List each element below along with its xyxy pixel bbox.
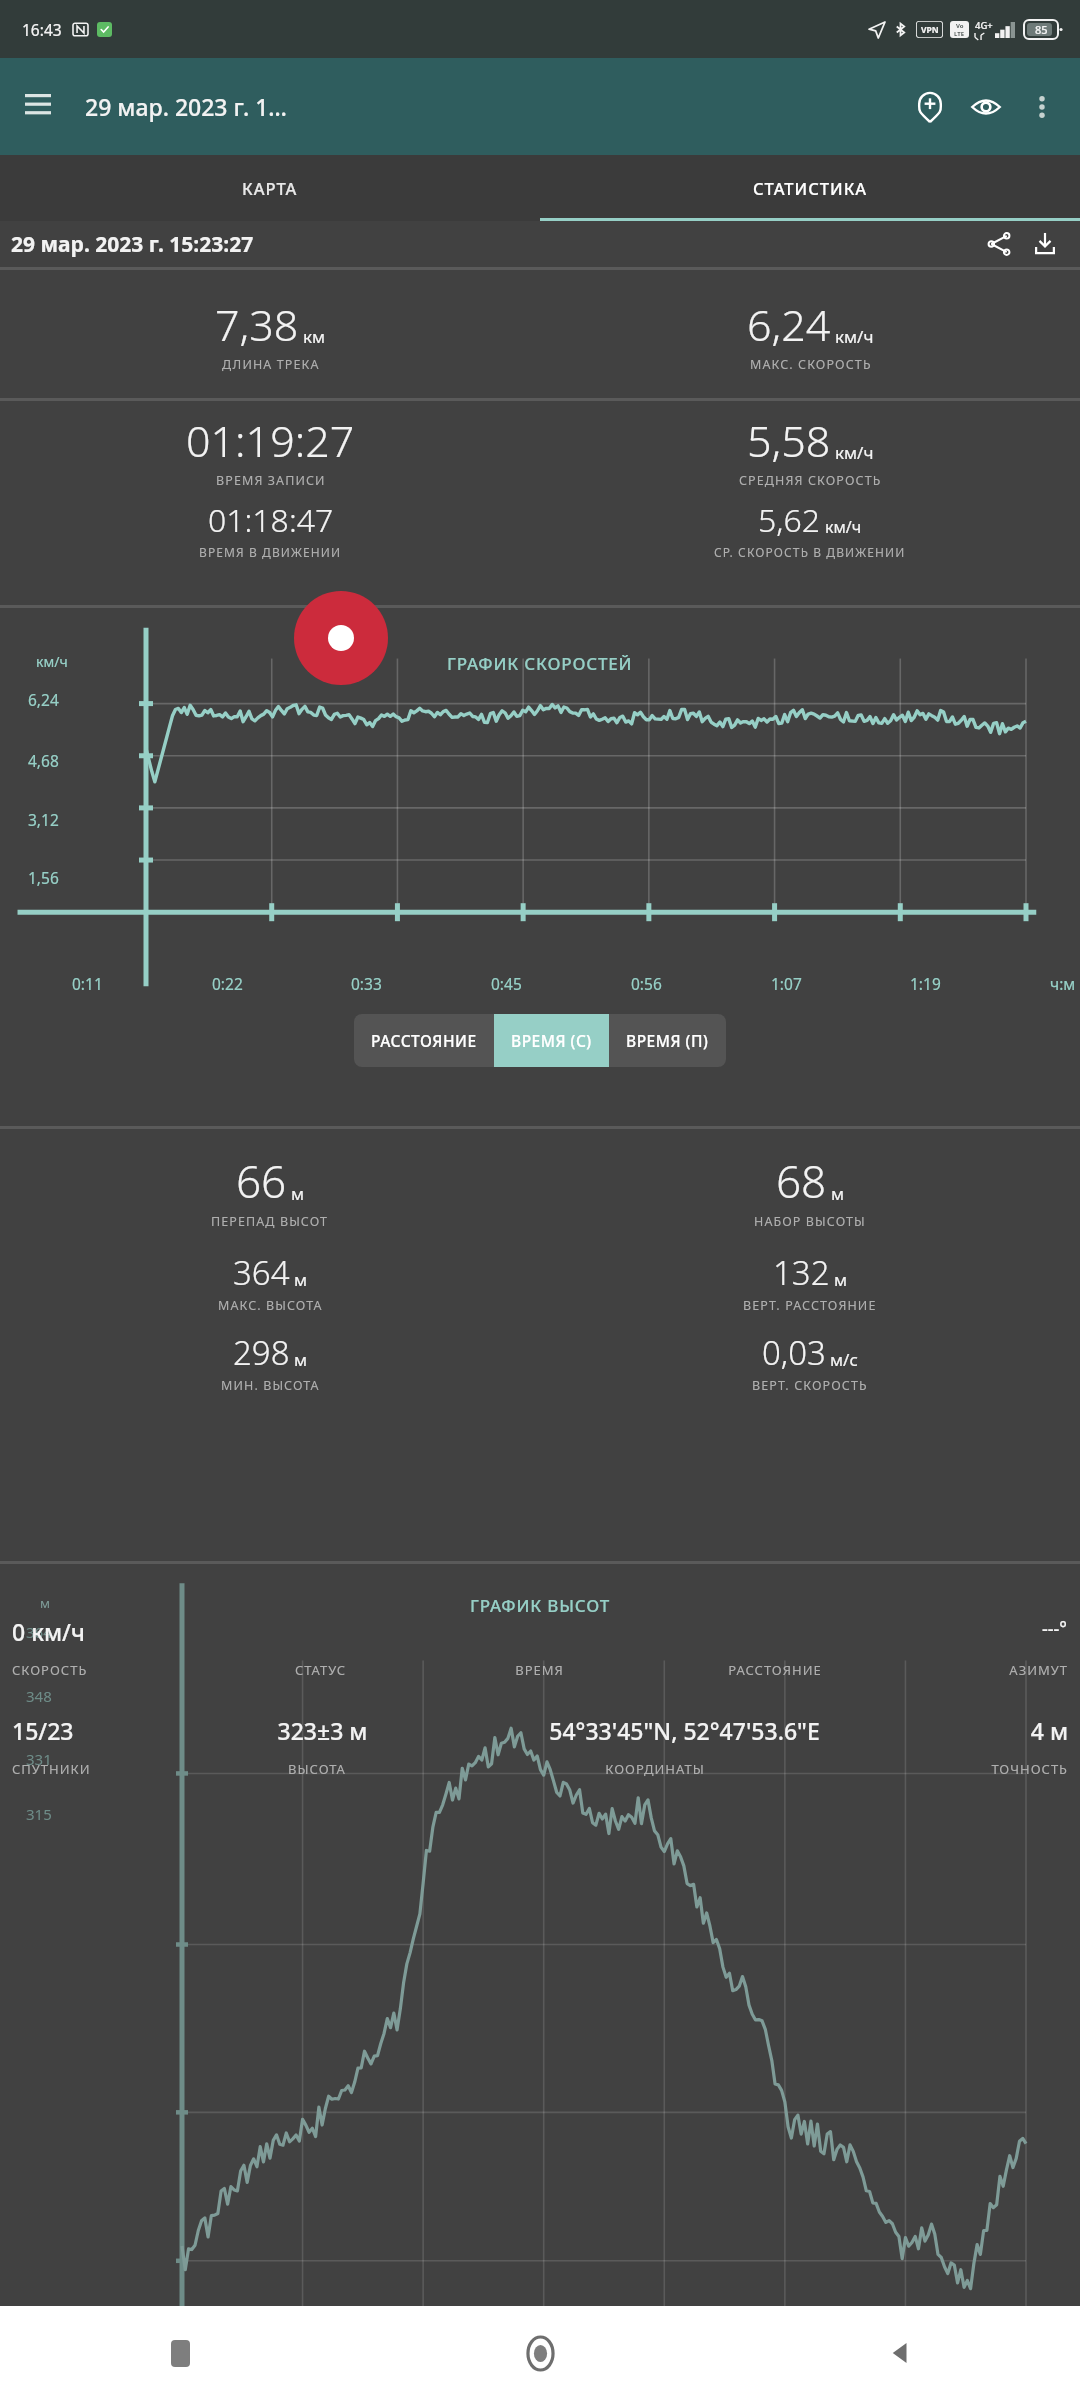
staticText: ВРЕМЯ В ДВИЖЕНИИ	[199, 544, 342, 560]
button[interactable]: Record	[294, 591, 388, 685]
staticText: м	[834, 1268, 848, 1291]
staticText: 298	[233, 1330, 290, 1375]
staticText: км/ч	[36, 652, 68, 671]
staticText: ВРЕМЯ ЗАПИСИ	[216, 472, 326, 489]
staticText: НАБОР ВЫСОТЫ	[754, 1213, 866, 1230]
staticText: м	[831, 1182, 845, 1205]
staticText: 1:07	[771, 973, 802, 994]
staticText: СТАТУС	[215, 1661, 426, 1679]
staticText: ГРАФИК СКОРОСТЕЙ	[447, 652, 633, 675]
button[interactable]: ВРЕМЯ (П)	[609, 1014, 726, 1067]
button[interactable]: Back	[881, 2334, 919, 2372]
staticText: 315	[26, 1804, 52, 1824]
button[interactable]: Menu	[14, 83, 62, 131]
button[interactable]: Home	[521, 2334, 559, 2372]
staticText: 0:56	[631, 973, 662, 994]
staticText: м	[294, 1268, 308, 1291]
staticText: км/ч	[825, 516, 862, 538]
staticText: 0,03	[762, 1330, 826, 1375]
staticText: МАКС. СКОРОСТЬ	[750, 356, 872, 373]
staticText: ДЛИНА ТРЕКА	[222, 356, 320, 373]
staticText: 29 мар. 2023 г. 1…	[85, 91, 287, 122]
staticText: 4G+	[975, 19, 993, 32]
staticText: м	[40, 1594, 50, 1612]
button[interactable]: Recent apps	[171, 2340, 190, 2367]
staticText: 364	[26, 1622, 52, 1642]
staticText: 1:19	[910, 973, 941, 994]
staticText: 7,38	[215, 295, 299, 354]
button[interactable]: Visibility	[958, 79, 1014, 135]
staticText: ГРАФИК ВЫСОТ	[470, 1594, 610, 1617]
staticText: ТОЧНОСТЬ	[886, 1760, 1068, 1778]
staticText: МИН. ВЫСОТА	[221, 1377, 320, 1394]
staticText: 66	[236, 1151, 287, 1211]
staticText: СР. СКОРОСТЬ В ДВИЖЕНИИ	[714, 544, 906, 560]
staticText: км/ч	[835, 325, 874, 348]
staticText: 5,62	[758, 498, 821, 542]
staticText: 16:43	[22, 19, 62, 40]
staticText: КАРТА	[242, 177, 298, 199]
staticText: ПЕРЕПАД ВЫСОТ	[211, 1213, 329, 1230]
staticText: КООРДИНАТЫ	[424, 1760, 886, 1778]
staticText: ВЕРТ. РАССТОЯНИЕ	[743, 1297, 877, 1314]
staticText: 0 км/ч	[12, 1616, 85, 1647]
staticText: 01:19:27	[186, 411, 355, 470]
staticText: 0:22	[212, 973, 243, 994]
button[interactable]: Share	[976, 221, 1022, 267]
staticText: 3,12	[28, 809, 59, 830]
staticText: 132	[773, 1250, 830, 1295]
staticText: 85	[1035, 22, 1048, 37]
staticText: Vo	[956, 22, 964, 30]
staticText: ВРЕМЯ (С)	[511, 1030, 592, 1051]
staticText: 4 м	[920, 1715, 1068, 1746]
staticText: ВЕРТ. СКОРОСТЬ	[752, 1377, 868, 1394]
staticText: 364	[233, 1250, 290, 1295]
staticText: 348	[26, 1686, 52, 1706]
staticText: ч:м	[1050, 973, 1076, 994]
staticText: LTE	[954, 30, 965, 38]
staticText: 4,68	[28, 750, 59, 771]
staticText: ВРЕМЯ (П)	[626, 1030, 709, 1051]
button[interactable]: РАССТОЯНИЕ	[354, 1014, 494, 1067]
staticText: СПУТНИКИ	[12, 1760, 210, 1778]
staticText: км	[303, 325, 326, 348]
staticText: 54°33'45"N, 52°47'53.6"E	[449, 1715, 920, 1746]
staticText: 1,56	[28, 867, 59, 888]
staticText: 29 мар. 2023 г. 15:23:27	[11, 230, 254, 259]
staticText: м	[291, 1182, 305, 1205]
staticText: 68	[776, 1151, 827, 1211]
staticText: РАССТОЯНИЕ	[653, 1661, 897, 1679]
staticText: 6,24	[747, 295, 831, 354]
button[interactable]: СТАТИСТИКА	[540, 155, 1080, 221]
staticText: 0:45	[491, 973, 522, 994]
staticText: СРЕДНЯЯ СКОРОСТЬ	[739, 472, 882, 489]
button[interactable]: Add waypoint	[902, 79, 958, 135]
button[interactable]: ВРЕМЯ (С)	[494, 1014, 609, 1067]
staticText: МАКС. ВЫСОТА	[218, 1297, 323, 1314]
staticText: ВРЕМЯ	[426, 1661, 653, 1679]
staticText: 0:33	[351, 973, 382, 994]
staticText: СКОРОСТЬ	[12, 1661, 215, 1679]
staticText: м	[294, 1348, 308, 1371]
staticText: 0:11	[72, 973, 103, 994]
staticText: м/с	[830, 1348, 858, 1371]
button[interactable]: More options	[1014, 79, 1070, 135]
staticText: ВЫСОТА	[210, 1760, 424, 1778]
button[interactable]: КАРТА	[0, 155, 540, 221]
staticText: СТАТИСТИКА	[753, 177, 868, 199]
staticText: км/ч	[835, 441, 874, 464]
staticText: АЗИМУТ	[897, 1661, 1068, 1679]
button[interactable]: Download	[1022, 221, 1068, 267]
staticText: 323±3 м	[196, 1715, 449, 1746]
staticText: ---°	[1042, 1616, 1068, 1641]
staticText: 01:18:47	[208, 498, 334, 542]
staticText: РАССТОЯНИЕ	[371, 1030, 477, 1051]
staticText: VPN	[921, 24, 939, 36]
staticText: 5,58	[747, 411, 831, 470]
staticText: 6,24	[28, 689, 59, 710]
staticText: 331	[26, 1749, 52, 1769]
staticText: 15/23	[12, 1715, 196, 1746]
